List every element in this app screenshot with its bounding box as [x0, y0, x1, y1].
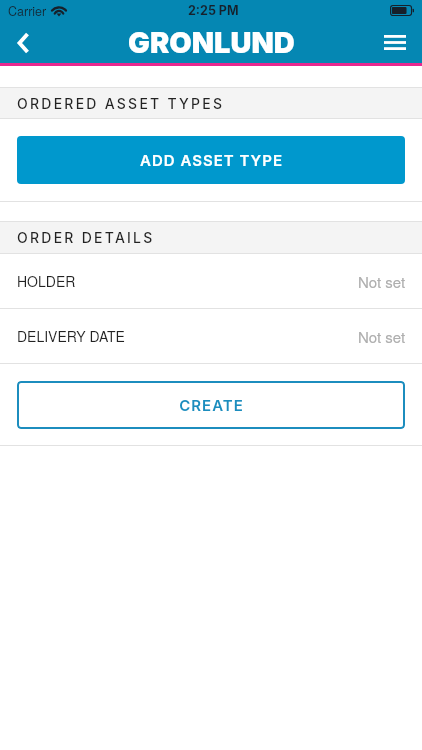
other: Battery — [390, 5, 414, 16]
button[interactable]: HOLDER — [0, 254, 422, 308]
button[interactable]: Back — [0, 21, 46, 63]
button[interactable]: ADD ASSET TYPE — [17, 136, 405, 184]
staticText: Not set — [358, 271, 406, 292]
staticText: Not set — [358, 326, 406, 347]
other: Wi-Fi — [50, 5, 68, 16]
button[interactable]: CREATE — [17, 381, 405, 429]
staticText: ADD ASSET TYPE — [140, 151, 283, 169]
staticText: HOLDER — [17, 271, 76, 291]
staticText: GRONLUND — [128, 25, 295, 60]
staticText: ORDER DETAILS — [17, 229, 155, 246]
staticText: DELIVERY DATE — [17, 326, 125, 346]
staticText: CREATE — [179, 396, 244, 414]
staticText: 2:25 PM — [188, 3, 239, 18]
staticText: Carrier — [8, 2, 47, 20]
staticText: ORDERED ASSET TYPES — [17, 95, 225, 112]
button[interactable]: DELIVERY DATE — [0, 309, 422, 363]
button[interactable]: Menu — [367, 21, 422, 63]
